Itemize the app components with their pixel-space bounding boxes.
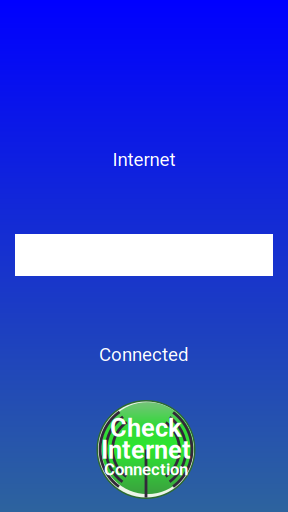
staticText: Connected: [99, 344, 189, 365]
button[interactable]: Check Internet Connection: [96, 400, 195, 499]
staticText: Internet: [101, 435, 191, 465]
staticText: Connection: [104, 460, 188, 479]
staticText: Internet: [112, 149, 175, 170]
staticText: Check: [110, 413, 182, 443]
